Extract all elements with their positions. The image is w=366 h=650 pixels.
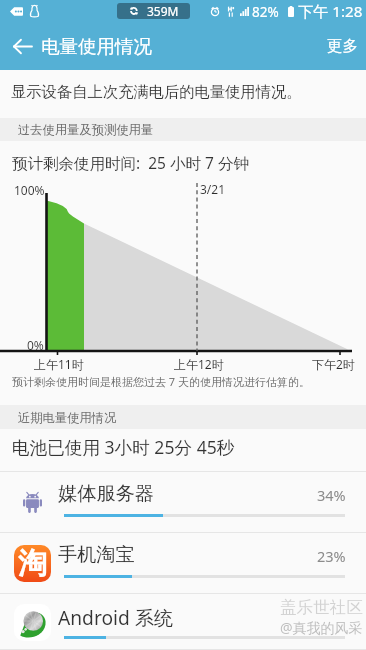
- button[interactable]: Back: [0, 22, 44, 70]
- staticText: 电池已使用 3小时 25分 45秒: [12, 435, 235, 459]
- staticText: 82%: [252, 3, 279, 21]
- staticText: 3/21: [200, 181, 226, 197]
- button[interactable]: Android 系统: [0, 594, 366, 650]
- staticText: 34%: [317, 485, 346, 505]
- staticText: 近期电量使用情况: [18, 410, 117, 425]
- staticText: 媒体服务器: [58, 482, 154, 506]
- staticText: 下午 1:28: [298, 1, 363, 22]
- staticText: 23%: [317, 546, 346, 566]
- staticText: 更多: [327, 36, 358, 56]
- staticText: 100%: [14, 182, 45, 198]
- staticText: 显示设备自上次充满电后的电量使用情况。: [11, 82, 302, 101]
- staticText: 电量使用情况: [41, 35, 152, 58]
- staticText: 手机淘宝: [58, 543, 135, 567]
- staticText: 盖乐世社区: [280, 597, 363, 618]
- staticText: 过去使用量及预测使用量: [18, 122, 154, 137]
- staticText: 下午2时: [312, 356, 355, 372]
- staticText: 0%: [27, 337, 44, 353]
- staticText: 上午11时: [34, 356, 84, 372]
- staticText: 预计剩余使用时间: 25 小时 7 分钟: [12, 152, 249, 173]
- button[interactable]: 淘: [0, 533, 366, 594]
- staticText: 359M: [147, 3, 179, 19]
- staticText: 淘: [18, 545, 47, 582]
- staticText: 预计剩余使用时间是根据您过去 7 天的使用情况进行估算的。: [12, 374, 311, 389]
- button[interactable]: 更多: [318, 22, 366, 70]
- staticText: 上午12时: [174, 356, 224, 372]
- staticText: Android 系统: [58, 604, 174, 630]
- button[interactable]: 媒体服务器: [0, 472, 366, 533]
- staticText: @真我的风采: [280, 618, 363, 637]
